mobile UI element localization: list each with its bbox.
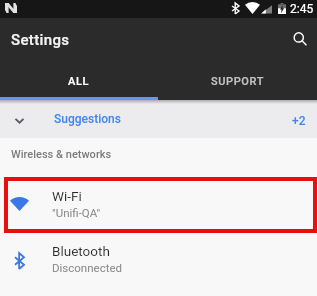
staticText: ALL [68,75,90,88]
staticText: Disconnected [52,261,123,274]
staticText: Settings [11,31,70,49]
staticText: SUPPORT [211,75,264,88]
staticText: +2 [292,114,306,128]
button[interactable]: SUPPORT [158,64,317,97]
button[interactable]: Search [283,25,315,57]
button[interactable]: Bluetooth [0,231,317,286]
button[interactable]: Suggestions [0,100,317,138]
staticText: "Unifi-QA" [52,206,101,219]
staticText: Bluetooth [52,243,110,259]
staticText: Wireless & networks [11,148,112,161]
staticText: 2:45 [290,2,314,16]
staticText: Wi-Fi [52,188,82,204]
button[interactable]: Wi-Fi [0,176,317,231]
staticText: Suggestions [54,112,121,126]
button[interactable]: ALL [0,64,158,97]
